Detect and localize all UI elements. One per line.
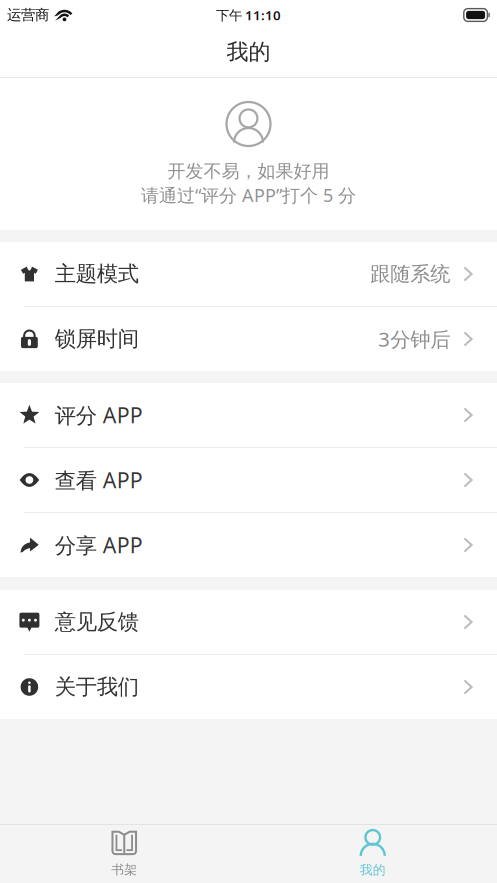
staticText: 查看 APP — [55, 465, 143, 495]
staticText: 下午 11:10 — [216, 6, 281, 24]
button[interactable]: 查看 APP — [0, 448, 497, 513]
staticText: 我的 — [360, 862, 386, 878]
button[interactable]: 关于我们 — [0, 655, 497, 719]
staticText: 运营商 — [7, 6, 49, 24]
staticText: 分享 APP — [55, 530, 143, 560]
button[interactable]: 评分 APP — [0, 383, 497, 448]
staticText: 请通过“评分 APP”打个 5 分 — [141, 183, 356, 207]
button[interactable]: 锁屏时间 — [0, 307, 497, 371]
staticText: 开发不易，如果好用 — [167, 160, 329, 183]
staticText: 书架 — [111, 862, 137, 878]
staticText: 关于我们 — [55, 674, 139, 700]
staticText: 意见反馈 — [55, 609, 139, 635]
button[interactable]: 主题模式 — [0, 242, 497, 307]
button[interactable]: 分享 APP — [0, 513, 497, 577]
staticText: 跟随系统 — [370, 261, 450, 287]
staticText: 3分钟后 — [378, 325, 450, 353]
button[interactable]: 意见反馈 — [0, 590, 497, 655]
staticText: 我的 — [226, 38, 270, 66]
staticText: 锁屏时间 — [55, 326, 139, 352]
button[interactable]: 我的 — [248, 825, 497, 883]
button[interactable]: 书架 — [0, 825, 248, 883]
staticText: 评分 APP — [55, 400, 143, 430]
staticText: 主题模式 — [55, 261, 139, 287]
